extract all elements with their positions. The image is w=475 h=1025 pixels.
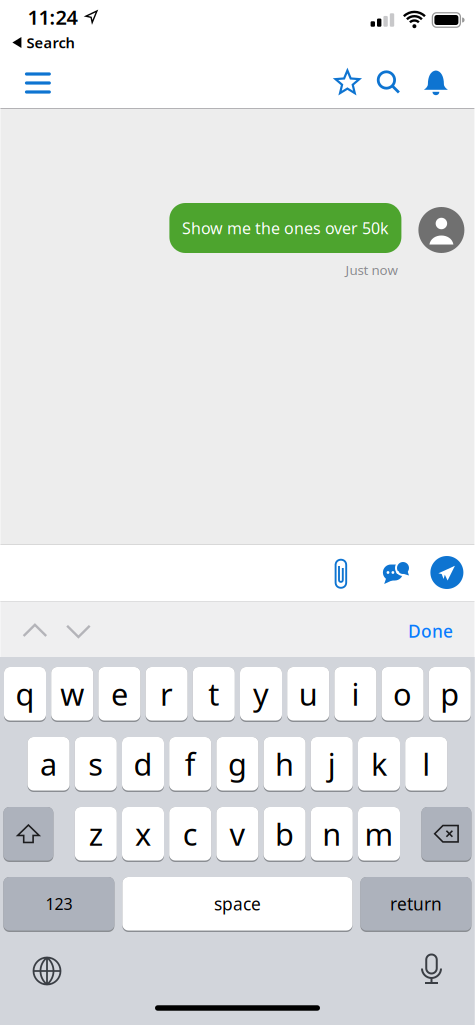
button[interactable]: w [51,667,93,722]
staticText: n [322,813,341,854]
staticText: 123 [45,893,72,914]
button[interactable]: i [334,667,376,722]
button[interactable] [22,623,47,638]
staticText: v [229,813,245,854]
staticText: a [40,743,57,784]
button[interactable]: space [122,877,352,932]
button[interactable]: Done [408,619,453,642]
staticText: m [364,813,393,854]
button[interactable]: g [216,737,258,792]
button[interactable] [66,624,91,639]
button[interactable]: q [4,667,46,722]
button[interactable]: t [193,667,235,722]
staticText: Show me the ones over 50k [182,217,389,239]
staticText: return [390,892,442,915]
button[interactable]: u [287,667,329,722]
staticText: h [275,743,294,784]
button[interactable]: k [358,737,400,792]
staticText: j [328,743,336,784]
staticText: l [422,743,430,784]
button[interactable]: n [311,807,353,862]
staticText: o [393,673,412,714]
button[interactable]: b [264,807,306,862]
button[interactable]: h [264,737,306,792]
button[interactable]: 123 [3,877,114,932]
button[interactable] [376,69,401,94]
staticText: w [60,673,84,714]
button[interactable] [430,556,463,589]
staticText: Just now [345,261,397,279]
staticText: u [299,673,318,714]
button[interactable] [423,70,449,95]
staticText: i [351,673,359,714]
button[interactable]: y [240,667,282,722]
button[interactable]: d [122,737,164,792]
staticText: g [228,743,247,784]
button[interactable]: z [75,807,117,862]
button[interactable]: x [122,807,164,862]
staticText: d [133,743,152,784]
staticText: q [15,673,34,714]
button[interactable] [382,561,410,584]
staticText: r [160,673,173,714]
button[interactable]: a [28,737,70,792]
button[interactable]: m [358,807,400,862]
button[interactable]: s [75,737,117,792]
staticText: t [208,673,219,714]
staticText: Search [26,33,74,52]
staticText: y [253,673,269,714]
button[interactable]: r [146,667,188,722]
staticText: z [89,813,103,854]
button[interactable]: e [98,667,140,722]
button[interactable] [3,807,53,862]
button[interactable] [333,556,348,589]
staticText: Done [408,619,453,642]
staticText: e [111,673,128,714]
staticText: b [275,813,294,854]
button[interactable]: j [311,737,353,792]
staticText: 11:24 [27,4,77,30]
button[interactable] [334,69,360,96]
button[interactable] [418,953,444,984]
staticText: c [183,813,198,854]
staticText: p [440,673,459,714]
button[interactable]: o [382,667,424,722]
staticText: space [214,892,261,915]
staticText: x [135,813,151,854]
staticText: s [88,743,103,784]
button[interactable]: v [216,807,258,862]
button[interactable]: l [405,737,447,792]
staticText: k [371,743,387,784]
button[interactable]: p [429,667,471,722]
staticText: f [185,743,196,784]
button[interactable]: f [169,737,211,792]
button[interactable] [421,807,471,862]
button[interactable] [25,72,51,94]
button[interactable]: return [360,877,471,932]
button[interactable]: Search [12,33,74,52]
button[interactable]: c [169,807,211,862]
button[interactable] [32,956,61,985]
